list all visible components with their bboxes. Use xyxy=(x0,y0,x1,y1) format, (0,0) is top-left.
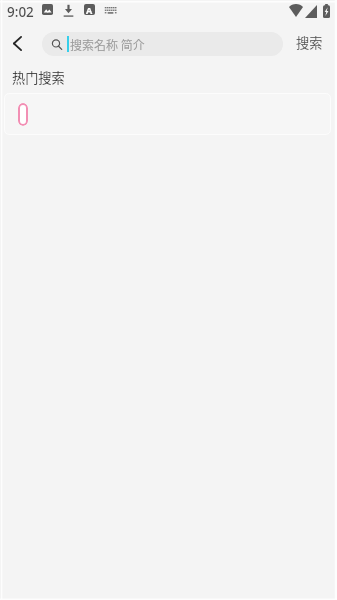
staticText: 热门搜索 xyxy=(12,68,65,87)
staticText: 搜索名称 简介 xyxy=(70,36,145,53)
staticText: 搜索 xyxy=(296,33,323,52)
button[interactable]: Hot search tag xyxy=(18,103,28,126)
staticText: 9:02 xyxy=(7,3,34,18)
button[interactable]: Back xyxy=(2,26,32,60)
staticText: A xyxy=(86,4,93,15)
button[interactable]: 搜索名称 简介 xyxy=(42,32,283,56)
button[interactable]: 搜索 xyxy=(285,25,333,59)
